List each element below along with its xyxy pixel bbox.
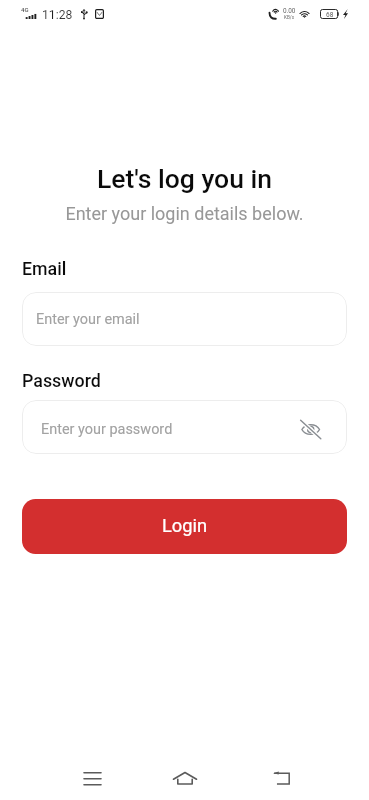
staticText: Enter your email [36, 311, 140, 328]
staticText: Enter your password [41, 421, 173, 438]
staticText: Let's log you in [0, 163, 369, 194]
button[interactable]: Recent apps [72, 758, 113, 798]
staticText: Password [22, 370, 101, 391]
button[interactable]: Enter your password [22, 400, 347, 454]
staticText: KB/s [284, 15, 295, 20]
staticText: 4G [21, 6, 29, 13]
staticText: Enter your login details below. [0, 203, 369, 224]
button[interactable]: Show password [297, 416, 323, 442]
staticText: 0.00 [283, 7, 296, 15]
staticText: 68 [326, 11, 334, 19]
staticText: Email [22, 258, 67, 279]
button[interactable]: Home [164, 758, 206, 798]
button[interactable]: Back [260, 758, 302, 798]
staticText: Login [162, 515, 208, 536]
button[interactable]: Enter your email [22, 292, 347, 346]
button[interactable]: Login [22, 499, 347, 554]
staticText: 11:28 [42, 8, 73, 22]
